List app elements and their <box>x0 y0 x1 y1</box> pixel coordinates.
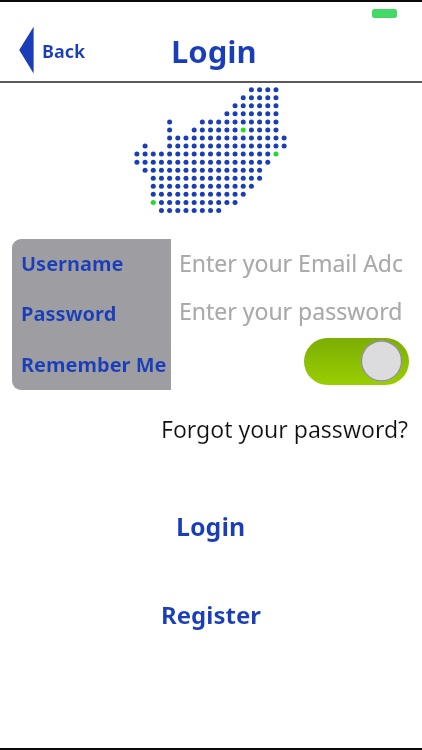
staticText: Login <box>176 509 246 543</box>
button[interactable]: Enter your password <box>179 295 420 327</box>
staticText: Forgot your password? <box>161 413 409 444</box>
button[interactable]: Remember Me <box>21 351 167 378</box>
button[interactable]: Login <box>171 30 257 72</box>
staticText: Login <box>171 30 257 72</box>
staticText: Enter your password <box>179 295 403 326</box>
button[interactable]: Back <box>8 24 94 76</box>
staticText: Username <box>21 250 124 277</box>
button[interactable]: Login <box>176 509 246 543</box>
staticText: Enter your Email Adc <box>179 247 404 278</box>
staticText: Register <box>161 598 261 631</box>
button[interactable]: Register <box>161 598 261 631</box>
button[interactable]: Username <box>21 250 124 277</box>
staticText: Remember Me <box>21 351 167 378</box>
staticText: Back <box>42 39 86 64</box>
button[interactable]: Password <box>21 300 117 327</box>
staticText: Password <box>21 300 117 327</box>
button[interactable]: Forgot your password? <box>161 413 409 444</box>
button[interactable]: Remember me <box>304 338 409 385</box>
button[interactable]: Enter your Email Adc <box>179 247 420 279</box>
